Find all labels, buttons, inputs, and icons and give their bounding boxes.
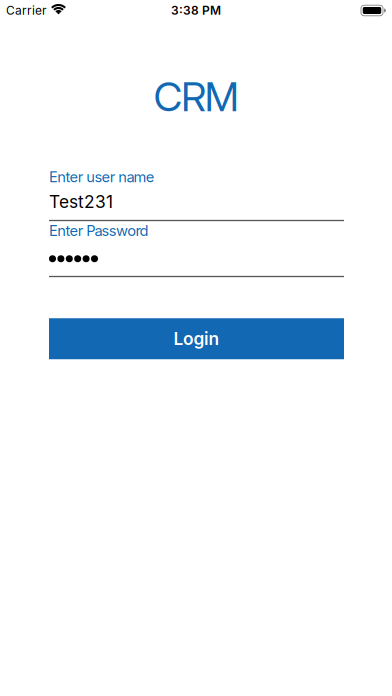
button[interactable]: Password bbox=[49, 255, 344, 274]
staticText: Enter user name bbox=[49, 168, 155, 185]
staticText: Login bbox=[173, 328, 219, 349]
staticText: Enter Password bbox=[49, 222, 149, 239]
button[interactable]: User name bbox=[49, 191, 344, 222]
staticText: 3:38 PM bbox=[171, 3, 221, 18]
staticText: CRM bbox=[153, 73, 238, 120]
staticText: Carrier bbox=[6, 3, 47, 18]
staticText: Test231 bbox=[49, 191, 113, 212]
button[interactable]: Login bbox=[49, 318, 344, 359]
